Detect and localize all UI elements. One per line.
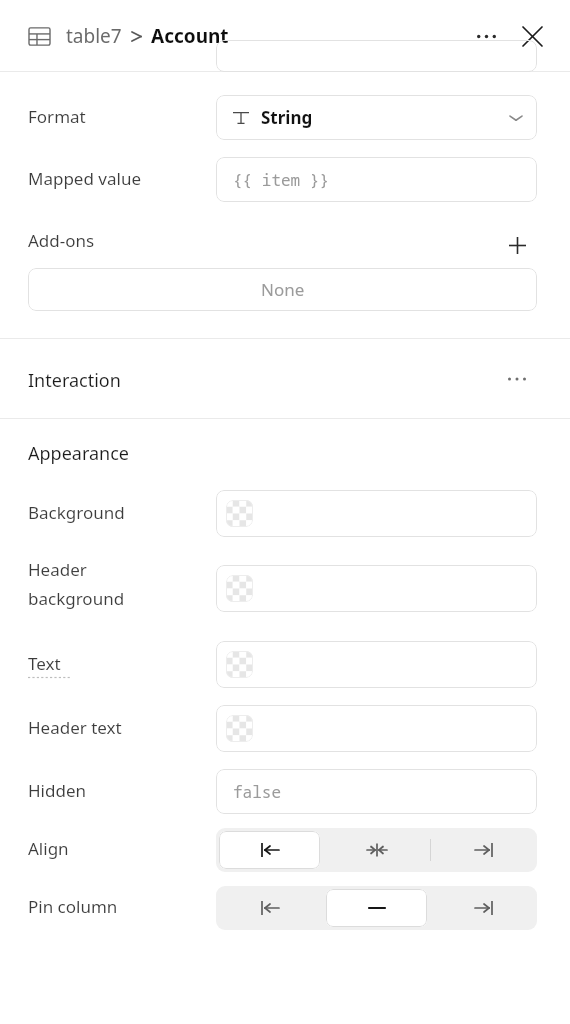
staticText: Appearance bbox=[28, 441, 129, 466]
button[interactable]: Interaction options bbox=[498, 360, 536, 398]
button[interactable]: Table bbox=[26, 23, 52, 49]
button[interactable]: Pick colour bbox=[216, 565, 537, 612]
button[interactable]: Align right bbox=[433, 889, 534, 927]
staticText: table7 bbox=[66, 23, 122, 49]
button[interactable]: None bbox=[28, 268, 537, 311]
button[interactable]: Close bbox=[512, 16, 552, 56]
staticText: Background bbox=[28, 501, 125, 524]
staticText: background bbox=[28, 587, 125, 610]
button[interactable]: Align left bbox=[219, 889, 320, 927]
button[interactable]: Pick colour bbox=[216, 490, 537, 537]
staticText: Add-ons bbox=[28, 229, 95, 252]
staticText: Header text bbox=[28, 716, 122, 739]
staticText: Mapped value bbox=[28, 167, 141, 190]
staticText: {{ item }} bbox=[233, 169, 330, 191]
staticText: false bbox=[233, 781, 282, 803]
button[interactable]: {{ item }} bbox=[216, 157, 537, 202]
button[interactable] bbox=[216, 40, 537, 72]
button[interactable]: Account bbox=[151, 23, 229, 49]
staticText: Format bbox=[28, 105, 86, 128]
button[interactable]: More options bbox=[466, 16, 506, 56]
button[interactable]: Align center bbox=[326, 889, 427, 927]
staticText: None bbox=[261, 278, 305, 301]
staticText: Interaction bbox=[28, 368, 121, 393]
button[interactable]: Interaction bbox=[0, 339, 570, 418]
button[interactable]: Add add-on bbox=[498, 226, 536, 264]
button[interactable]: Pick colour bbox=[216, 641, 537, 688]
button[interactable]: Align left bbox=[219, 831, 320, 869]
staticText: Hidden bbox=[28, 779, 86, 802]
staticText: Pin column bbox=[28, 895, 118, 918]
staticText: Text bbox=[28, 652, 61, 675]
staticText: String bbox=[261, 106, 313, 129]
button[interactable]: String bbox=[216, 95, 537, 140]
button[interactable]: false bbox=[216, 769, 537, 814]
button[interactable]: Pick colour bbox=[216, 705, 537, 752]
staticText: Align bbox=[28, 837, 69, 860]
staticText: Header bbox=[28, 558, 87, 581]
button[interactable]: Align right bbox=[433, 831, 534, 869]
button[interactable]: Align center bbox=[326, 831, 427, 869]
button[interactable]: table7 bbox=[66, 23, 122, 49]
